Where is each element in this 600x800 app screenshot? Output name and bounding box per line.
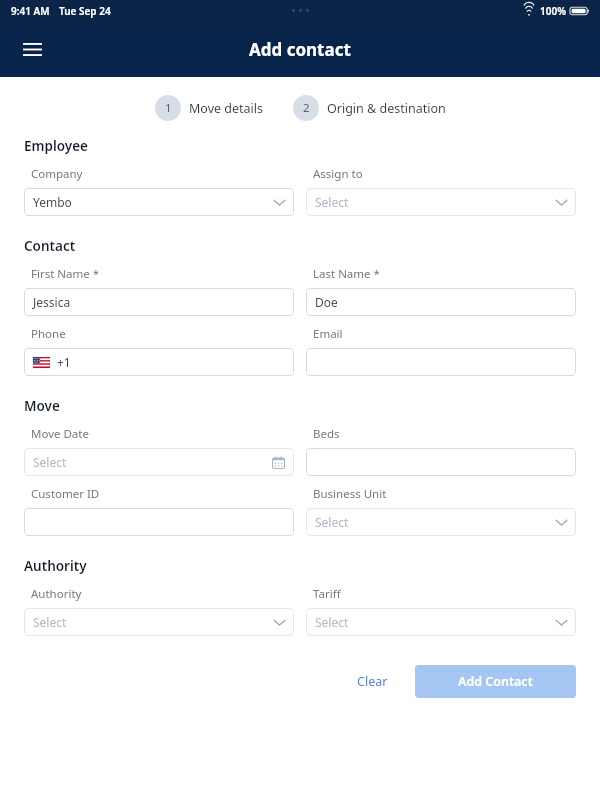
button[interactable]: Select	[306, 608, 576, 636]
staticText: Yembo	[33, 194, 72, 210]
staticText: Jessica	[33, 294, 71, 310]
staticText: First Name *	[31, 266, 100, 282]
staticText: +1	[57, 354, 71, 370]
staticText: Select	[315, 514, 349, 530]
staticText: Business Unit	[313, 486, 387, 502]
staticText: Clear	[357, 673, 388, 690]
staticText: Move	[24, 397, 60, 415]
button[interactable]: Select	[306, 188, 576, 216]
button[interactable]: Select move date	[24, 448, 294, 476]
staticText: Email	[313, 326, 343, 342]
staticText: 100%	[540, 4, 566, 18]
staticText: Select	[33, 614, 67, 630]
button[interactable]	[24, 508, 294, 536]
button[interactable]: Jessica	[24, 288, 294, 316]
staticText: Phone	[31, 326, 66, 342]
staticText: Doe	[315, 294, 338, 310]
staticText: Assign to	[313, 166, 363, 182]
staticText: Select	[315, 614, 349, 630]
staticText: Select	[315, 194, 349, 210]
button[interactable]: Yembo	[24, 188, 294, 216]
staticText: Move Date	[31, 426, 89, 442]
button[interactable]: 2	[293, 93, 446, 123]
button[interactable]	[306, 448, 576, 476]
button[interactable]: Doe	[306, 288, 576, 316]
staticText: Tariff	[313, 586, 341, 602]
staticText: Contact	[24, 237, 76, 255]
button[interactable]	[306, 348, 576, 376]
staticText: Move details	[189, 100, 264, 117]
staticText: Tue Sep 24	[59, 4, 111, 18]
staticText: Beds	[313, 426, 340, 442]
staticText: 9:41 AM	[11, 4, 50, 18]
staticText: 2	[303, 100, 310, 116]
staticText: Employee	[24, 137, 89, 155]
button[interactable]: Clear	[343, 664, 402, 699]
staticText: 1	[165, 100, 172, 116]
staticText: Authority	[24, 557, 87, 575]
staticText: Add Contact	[458, 673, 533, 690]
staticText: Select	[33, 454, 67, 470]
staticText: Customer ID	[31, 486, 100, 502]
button[interactable]: +1	[24, 348, 294, 376]
button[interactable]: Add Contact	[415, 665, 576, 698]
staticText: Company	[31, 166, 83, 182]
staticText: Origin & destination	[327, 100, 446, 117]
button[interactable]: Select	[306, 508, 576, 536]
staticText: Authority	[31, 586, 82, 602]
staticText: Add contact	[249, 38, 351, 61]
button[interactable]: 1	[155, 93, 264, 123]
staticText: Last Name *	[313, 266, 380, 282]
button[interactable]: Select	[24, 608, 294, 636]
button[interactable]: Open navigation menu	[14, 31, 50, 67]
